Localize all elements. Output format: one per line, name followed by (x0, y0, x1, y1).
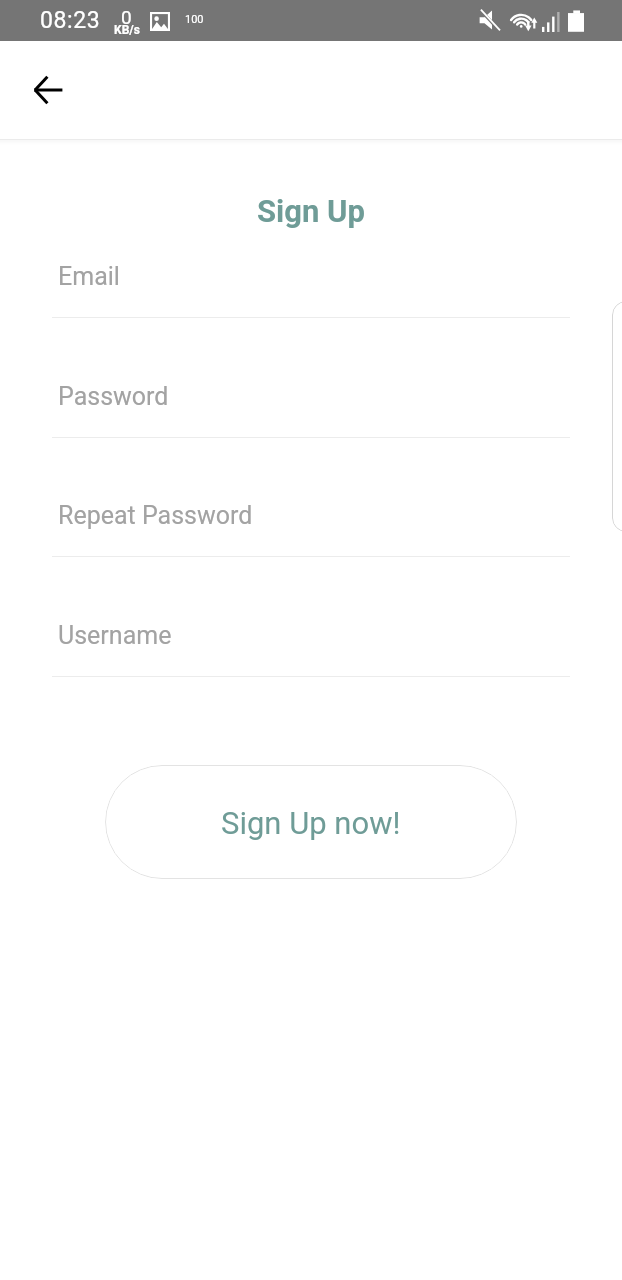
button[interactable]: Password (52, 365, 570, 438)
button[interactable]: Sign Up now! (105, 765, 517, 879)
staticText: 08:23 (40, 7, 101, 34)
staticText: Repeat Password (58, 501, 253, 530)
staticText: 100 (185, 13, 204, 26)
button[interactable]: Repeat Password (52, 484, 570, 557)
staticText: Sign Up now! (221, 805, 401, 841)
staticText: Password (58, 382, 169, 411)
staticText: KB/s (114, 23, 140, 37)
staticText: Username (58, 621, 172, 650)
button[interactable]: Back (12, 54, 84, 126)
staticText: Sign Up (0, 193, 622, 229)
staticText: 0 (121, 6, 132, 28)
button[interactable]: Username (52, 604, 570, 677)
staticText: Email (58, 262, 120, 291)
button[interactable]: Email (52, 245, 570, 318)
